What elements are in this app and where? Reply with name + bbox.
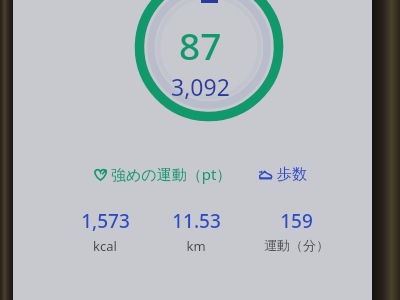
button[interactable]: 159 bbox=[244, 208, 348, 253]
staticText: 運動（分） bbox=[264, 237, 329, 253]
button[interactable]: 1,573 bbox=[62, 208, 148, 255]
button[interactable]: 強めの運動（pt） bbox=[91, 162, 234, 186]
staticText: km bbox=[186, 237, 206, 255]
button[interactable]: 11.53 bbox=[156, 208, 236, 255]
staticText: 11.53 bbox=[172, 208, 221, 234]
staticText: kcal bbox=[93, 237, 117, 255]
staticText: 歩数 bbox=[277, 165, 307, 184]
staticText: 1,573 bbox=[81, 208, 130, 234]
button[interactable]: 歩数 bbox=[256, 163, 309, 186]
staticText: 159 bbox=[280, 208, 313, 234]
staticText: 87 bbox=[179, 20, 222, 70]
staticText: 3,092 bbox=[171, 71, 230, 102]
staticText: 強めの運動（pt） bbox=[111, 164, 232, 184]
other: Daily activity progress ring bbox=[0, 0, 400, 300]
